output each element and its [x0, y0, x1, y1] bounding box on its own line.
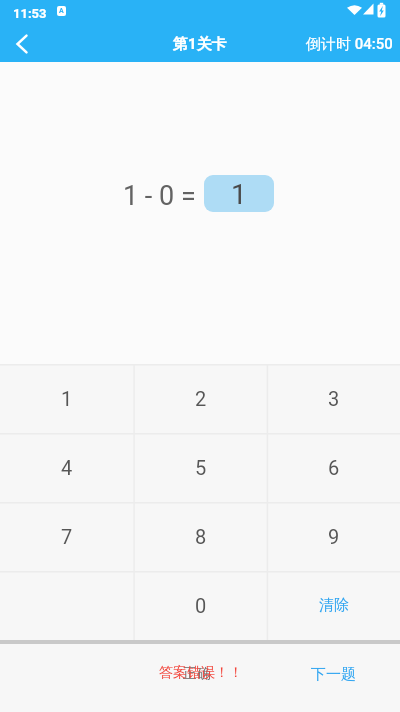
staticText: 倒计时 04:50 — [306, 35, 393, 54]
staticText: 1 - 0 = — [123, 180, 196, 212]
button[interactable]: 9 — [267, 502, 400, 571]
staticText: 第1关卡 — [173, 35, 227, 54]
staticText: 9 — [328, 525, 340, 548]
button[interactable]: 5 — [134, 433, 267, 502]
staticText: 1 — [61, 387, 73, 410]
staticText: 答案错误！！ — [159, 664, 243, 682]
staticText: 1 — [231, 178, 247, 211]
staticText: 4 — [61, 456, 73, 479]
staticText: 清除 — [319, 596, 349, 615]
staticText: 3 — [328, 387, 340, 410]
staticText: 11:53 — [13, 6, 47, 21]
button[interactable]: 下一题 — [267, 644, 400, 712]
button[interactable]: 2 — [134, 364, 267, 433]
button[interactable]: 1 — [204, 175, 274, 212]
button[interactable] — [8, 30, 36, 58]
button[interactable]: 1 — [0, 364, 134, 433]
button[interactable]: 清除 — [267, 571, 400, 640]
button[interactable]: 0 — [134, 571, 267, 640]
button[interactable]: 8 — [134, 502, 267, 571]
staticText: 正确 — [183, 665, 211, 683]
staticText: 0 — [195, 594, 207, 617]
staticText: 7 — [61, 525, 73, 548]
button[interactable]: 6 — [267, 433, 400, 502]
staticText: 下一题 — [311, 665, 356, 684]
staticText: 2 — [195, 387, 207, 410]
button[interactable]: 4 — [0, 433, 134, 502]
button[interactable]: 7 — [0, 502, 134, 571]
staticText: 5 — [195, 456, 207, 479]
button[interactable]: 3 — [267, 364, 400, 433]
staticText: 6 — [328, 456, 340, 479]
staticText: 8 — [195, 525, 207, 548]
staticText: A — [59, 7, 64, 15]
